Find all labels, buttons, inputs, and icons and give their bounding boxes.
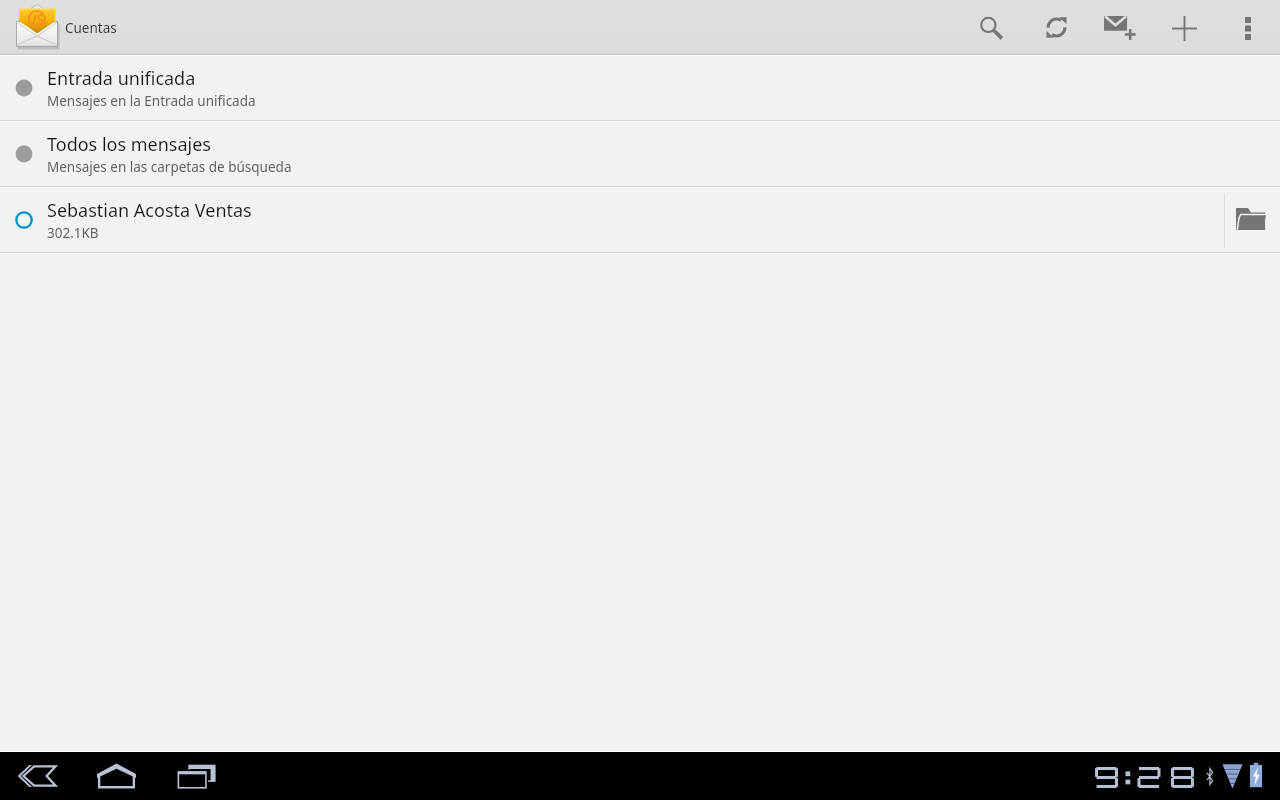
button[interactable]: Recent apps [160,752,240,800]
button[interactable]: Back [0,752,80,800]
button[interactable]: Sebastian Acosta Ventas [0,188,1280,252]
staticText: Sebastian Acosta Ventas [47,198,252,223]
button[interactable]: Entrada unificada [0,56,1280,120]
button[interactable]: Folders [1225,188,1280,252]
staticText: 302.1KB [47,224,99,242]
button[interactable]: Compose message [1088,0,1152,53]
staticText: Entrada unificada [47,66,196,91]
button[interactable]: More options [1216,0,1280,53]
staticText: Cuentas [65,19,117,37]
staticText: Mensajes en las carpetas de búsqueda [47,158,292,176]
button[interactable]: Home [80,752,160,800]
button[interactable]: Add account [1152,0,1216,53]
button[interactable]: Refresh [1024,0,1088,53]
button[interactable]: Todos los mensajes [0,122,1280,186]
staticText: Todos los mensajes [47,132,211,157]
staticText: Mensajes en la Entrada unificada [47,92,256,110]
button[interactable]: Search [960,0,1024,53]
